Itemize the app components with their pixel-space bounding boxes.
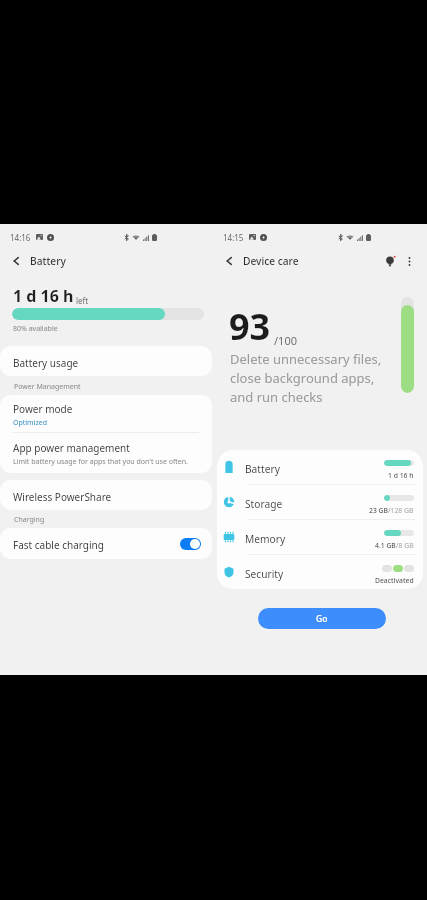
staticText: Battery <box>30 254 66 268</box>
staticText: Battery usage <box>13 356 79 370</box>
staticText: 1 d 16 h <box>388 471 414 480</box>
staticText: Fast cable charging <box>13 538 104 552</box>
staticText: Delete unnecessary files, close backgrou… <box>230 350 382 406</box>
button[interactable]: Fast cable charging <box>13 528 201 559</box>
staticText: Security <box>245 567 284 581</box>
staticText: 23 GB <box>369 506 388 515</box>
staticText: 1 d 16 h <box>13 285 74 307</box>
staticText: Power mode <box>13 402 73 416</box>
other: Back <box>224 256 234 266</box>
button[interactable]: More options <box>399 251 419 271</box>
staticText: Limit battery usage for apps that you do… <box>13 457 188 467</box>
staticText: Memory <box>245 532 286 546</box>
button[interactable]: Storage <box>222 485 414 519</box>
button[interactable]: Tips <box>380 251 400 271</box>
button[interactable]: Security <box>222 555 414 589</box>
staticText: 80% available <box>13 324 58 334</box>
staticText: App power management <box>13 441 130 455</box>
staticText: left <box>76 295 89 306</box>
staticText: Deactivated <box>375 576 414 585</box>
staticText: Wireless PowerShare <box>13 490 112 504</box>
staticText: Device care <box>243 254 299 268</box>
staticText: 14:15 <box>223 232 244 243</box>
staticText: Storage <box>245 497 283 511</box>
staticText: Battery <box>245 462 280 476</box>
staticText: Go <box>316 613 328 625</box>
staticText: Charging <box>14 515 45 525</box>
staticText: 93 <box>229 302 271 351</box>
staticText: 14:16 <box>10 232 31 243</box>
staticText: Optimized <box>13 418 47 428</box>
staticText: /100 <box>274 333 297 348</box>
button[interactable]: Go <box>258 608 386 629</box>
staticText: 4.1 GB <box>375 541 396 550</box>
button[interactable]: Battery <box>222 450 414 484</box>
button[interactable]: Back <box>0 250 213 272</box>
staticText: /8 GB <box>396 541 414 550</box>
button[interactable]: Wireless PowerShare <box>13 480 199 510</box>
button[interactable]: Memory <box>222 520 414 554</box>
other: Back <box>11 256 21 266</box>
button[interactable]: App power management <box>13 433 199 473</box>
button[interactable]: Back <box>224 254 299 268</box>
staticText: /128 GB <box>388 506 414 515</box>
staticText: Power Management <box>14 382 81 392</box>
button[interactable]: Power mode <box>13 395 199 432</box>
button[interactable]: Battery usage <box>13 346 199 376</box>
